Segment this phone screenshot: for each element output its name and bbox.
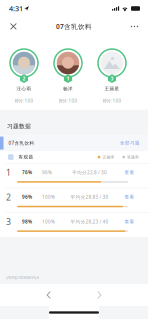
button[interactable]: More options: [125, 18, 144, 35]
staticText: 100%: [42, 194, 55, 200]
staticText: 100%: [42, 218, 55, 225]
staticText: 98%: [22, 218, 32, 225]
staticText: 汪心雨: [16, 86, 31, 92]
staticText: 3: [110, 75, 113, 82]
staticText: 杨洋: [63, 86, 73, 92]
staticText: 96%: [22, 194, 32, 200]
staticText: 07含乳饮料: [8, 140, 34, 146]
staticText: 正确率: [102, 155, 114, 160]
staticText: 王丽星: [104, 86, 119, 92]
button[interactable]: 3: [0, 213, 148, 237]
staticText: 查看: [124, 219, 134, 225]
staticText: 沪ICP备13036869号-8: [6, 275, 39, 280]
staticText: 答题率: [127, 155, 139, 160]
staticText: 平均分28.23 / 40: [70, 218, 108, 225]
staticText: 查看: [124, 169, 134, 175]
button[interactable]: Forward: [84, 285, 114, 305]
staticText: 1: [6, 166, 11, 178]
button[interactable]: 1: [46, 49, 90, 104]
staticText: 96%: [42, 169, 52, 176]
button[interactable]: Close: [4, 18, 23, 35]
staticText: 平均分22.8 / 30: [72, 169, 107, 176]
staticText: 平均分28.85 / 30: [70, 194, 108, 200]
staticText: 习题数据: [7, 123, 31, 130]
button[interactable]: 全部习题: [120, 136, 148, 150]
staticText: 得分: 100: [102, 98, 121, 104]
button[interactable]: Back: [33, 285, 64, 305]
staticText: 得分: 100: [58, 98, 77, 104]
staticText: 全部习题: [120, 140, 140, 146]
staticText: 76%: [22, 169, 32, 176]
staticText: 4:31: [9, 4, 23, 13]
staticText: 2: [6, 191, 11, 203]
staticText: 1: [66, 75, 69, 82]
button[interactable]: 2: [2, 49, 46, 104]
staticText: 得分: 100: [14, 98, 33, 104]
button[interactable]: 2: [0, 188, 148, 212]
staticText: 客观题: [19, 154, 34, 160]
staticText: 3: [6, 216, 11, 227]
staticText: 07含乳饮料: [56, 22, 92, 31]
staticText: 2: [22, 75, 25, 82]
button[interactable]: 1: [0, 164, 148, 188]
staticText: 查看: [124, 194, 134, 200]
button[interactable]: 3: [90, 49, 134, 104]
